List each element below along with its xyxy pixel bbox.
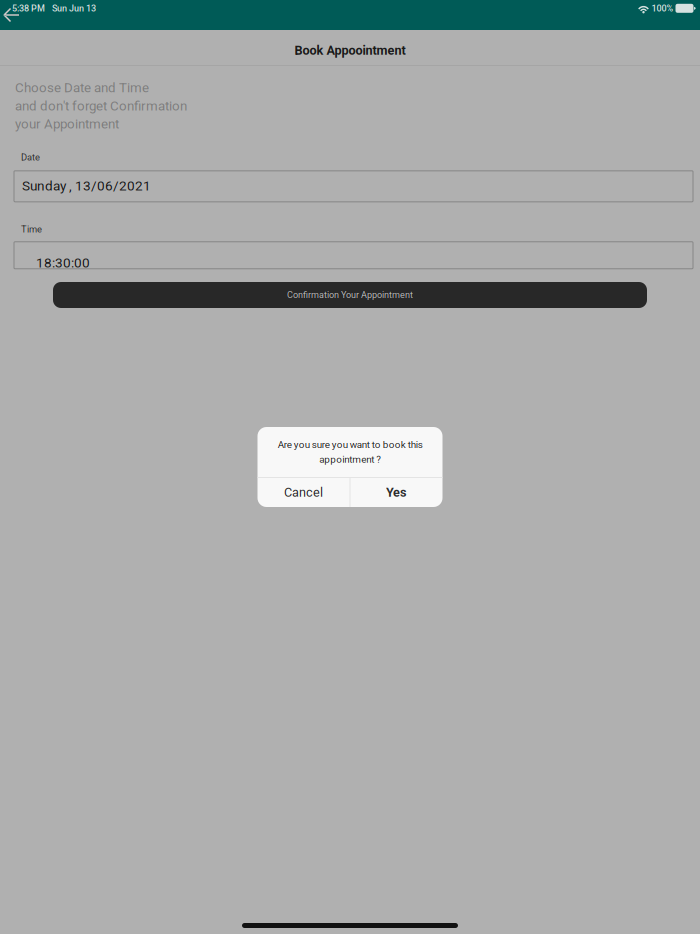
button[interactable]: Confirmation Your Appointment (53, 282, 647, 308)
staticText: Sun Jun 13 (52, 3, 96, 14)
staticText: Cancel (284, 485, 323, 500)
staticText: 100% (651, 3, 673, 14)
staticText: Date (21, 152, 40, 163)
staticText: Yes (386, 485, 407, 500)
staticText: Time (21, 224, 42, 235)
staticText: Choose Date and Time and don't forget Co… (15, 80, 187, 132)
staticText: Confirmation Your Appointment (287, 290, 413, 300)
staticText: Sunday , 13/06/2021 (22, 178, 151, 194)
button[interactable]: Yes (350, 478, 442, 507)
staticText: Book Appoointment (294, 43, 405, 58)
staticText: Are you sure you want to book this appoi… (277, 439, 422, 465)
staticText: 5:38 PM (12, 3, 45, 14)
staticText: 18:30:00 (36, 255, 90, 271)
button[interactable]: Cancel (257, 478, 349, 507)
button[interactable]: Back (0, 0, 19, 22)
